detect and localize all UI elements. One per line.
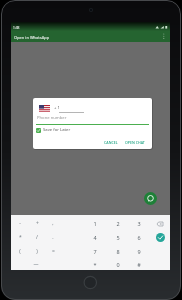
- staticText: +: [36, 220, 39, 227]
- button[interactable]: Phone number: [37, 115, 67, 121]
- button[interactable]: 8: [109, 245, 127, 258]
- button[interactable]: [151, 217, 168, 230]
- button[interactable]: *: [11, 231, 29, 244]
- staticText: 8: [116, 248, 120, 255]
- staticText: Save for Later: [43, 127, 71, 133]
- staticText: =: [52, 248, 55, 255]
- button[interactable]: ): [28, 245, 46, 258]
- staticText: CANCEL: [104, 140, 118, 145]
- button[interactable]: *: [86, 258, 104, 271]
- staticText: ,: [52, 220, 54, 227]
- button[interactable]: (: [11, 245, 29, 258]
- button[interactable]: /: [28, 231, 46, 244]
- staticText: 7: [93, 248, 97, 255]
- button[interactable]: OPEN CHAT: [121, 137, 149, 147]
- button[interactable]: ,: [44, 217, 62, 230]
- staticText: 9: [137, 248, 141, 255]
- button[interactable]: 7: [86, 245, 104, 258]
- staticText: —: [33, 261, 39, 268]
- staticText: 1: [93, 220, 97, 227]
- button[interactable]: CANCEL: [101, 137, 121, 147]
- button[interactable]: +: [28, 217, 46, 230]
- button[interactable]: =: [44, 245, 62, 258]
- button[interactable]: [144, 192, 157, 205]
- button[interactable]: 1:38: [11, 22, 170, 42]
- staticText: 5: [116, 234, 120, 241]
- button[interactable]: 1: [86, 217, 104, 230]
- staticText: ): [36, 248, 38, 255]
- staticText: + 1: [54, 105, 60, 111]
- staticText: *: [19, 234, 22, 241]
- button[interactable]: [36, 128, 41, 133]
- staticText: 2: [116, 220, 120, 227]
- button[interactable]: -: [11, 217, 29, 230]
- button[interactable]: 0: [109, 258, 127, 271]
- button[interactable]: 2: [109, 217, 127, 230]
- staticText: 6: [137, 234, 141, 241]
- staticText: -: [19, 220, 21, 227]
- button[interactable]: 4: [86, 231, 104, 244]
- staticText: 1:38: [13, 26, 20, 30]
- staticText: 3: [137, 220, 141, 227]
- staticText: /: [36, 234, 38, 241]
- button[interactable]: 6: [130, 231, 148, 244]
- staticText: 0: [116, 261, 120, 268]
- button[interactable]: —: [27, 258, 45, 271]
- staticText: Open in WhatsApp: [14, 35, 50, 40]
- staticText: (: [19, 248, 21, 255]
- button[interactable]: 3: [130, 217, 148, 230]
- staticText: OPEN CHAT: [125, 140, 145, 145]
- staticText: *: [93, 261, 97, 268]
- staticText: 4: [93, 234, 97, 241]
- staticText: .: [52, 234, 54, 241]
- button[interactable]: 5: [109, 231, 127, 244]
- staticText: #: [137, 261, 141, 268]
- button[interactable]: #: [130, 258, 148, 271]
- button[interactable]: 9: [130, 245, 148, 258]
- button[interactable]: [156, 233, 165, 242]
